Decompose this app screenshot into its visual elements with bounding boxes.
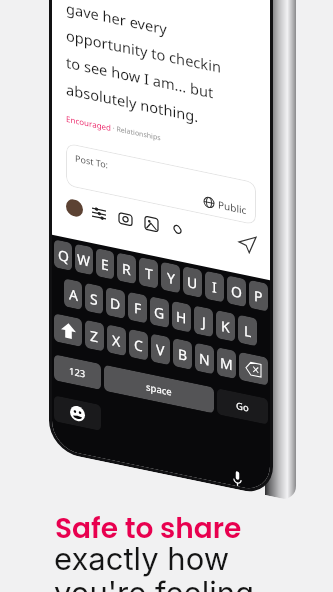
button[interactable]: E <box>96 228 114 256</box>
staticText: B <box>178 307 188 326</box>
button[interactable]: A <box>64 265 82 293</box>
staticText: W <box>77 233 91 252</box>
button[interactable]: Go <box>217 343 268 369</box>
button[interactable]: Camera <box>119 186 132 199</box>
button[interactable]: O <box>227 228 246 256</box>
button[interactable]: Shift <box>54 302 82 330</box>
button[interactable]: X <box>107 302 126 330</box>
button[interactable]: Emoji <box>54 384 101 410</box>
staticText: 123 <box>69 350 86 363</box>
button[interactable]: Backspace <box>239 302 268 330</box>
button[interactable]: Y <box>161 228 180 256</box>
button[interactable]: M <box>217 302 236 330</box>
staticText: N <box>199 307 210 326</box>
staticText: S <box>90 270 98 289</box>
staticText: G <box>154 270 165 289</box>
staticText: A <box>69 270 78 289</box>
staticText: O <box>231 233 242 252</box>
staticText: P <box>254 233 263 252</box>
staticText: D <box>110 270 121 289</box>
button[interactable]: V <box>151 302 170 330</box>
staticText: X <box>112 307 121 326</box>
button[interactable]: Z <box>85 302 104 330</box>
staticText: H <box>176 270 187 289</box>
staticText: Q <box>58 233 69 252</box>
button[interactable]: Profile <box>66 184 83 201</box>
button[interactable]: R <box>117 228 136 256</box>
button[interactable]: P <box>249 228 268 256</box>
button[interactable]: S <box>85 265 103 293</box>
button[interactable]: Filters <box>92 186 106 200</box>
staticText: you're feeling <box>54 574 255 592</box>
button[interactable]: H <box>172 265 191 293</box>
staticText: to see how I am... but <box>66 38 214 58</box>
staticText: J <box>202 270 206 289</box>
staticText: K <box>221 270 230 289</box>
staticText: Z <box>90 307 99 326</box>
staticText: absolutely nothing. <box>66 65 199 85</box>
staticText: · Relationships <box>111 100 161 110</box>
button[interactable]: B <box>173 302 192 330</box>
staticText: Post To: <box>75 136 109 148</box>
button[interactable]: W <box>75 228 93 256</box>
staticText: Go <box>236 350 249 363</box>
staticText: E <box>101 233 109 252</box>
button[interactable]: J <box>194 265 213 293</box>
staticText: R <box>122 233 131 252</box>
staticText: Safe to share <box>55 509 242 548</box>
staticText: space <box>146 350 172 363</box>
staticText: F <box>134 270 142 289</box>
button[interactable]: Post To: <box>66 129 256 172</box>
button[interactable]: Send <box>239 184 256 201</box>
button[interactable]: Q <box>54 228 72 256</box>
button[interactable]: T <box>139 228 158 256</box>
button[interactable]: D <box>106 265 125 293</box>
button[interactable]: K <box>216 265 235 293</box>
button[interactable]: C <box>129 302 148 330</box>
staticText: M <box>220 307 233 326</box>
staticText: Encouraged <box>66 99 111 110</box>
button[interactable]: N <box>195 302 214 330</box>
button[interactable]: 123 <box>54 343 101 369</box>
staticText: L <box>244 270 252 289</box>
staticText: V <box>156 307 165 326</box>
staticText: exactly how <box>54 540 230 578</box>
button[interactable]: space <box>104 343 214 369</box>
staticText: opportunity to checkin <box>66 11 221 31</box>
button[interactable]: G <box>150 265 169 293</box>
button[interactable]: F <box>128 265 147 293</box>
staticText: C <box>134 307 143 326</box>
button[interactable]: L <box>238 265 257 293</box>
